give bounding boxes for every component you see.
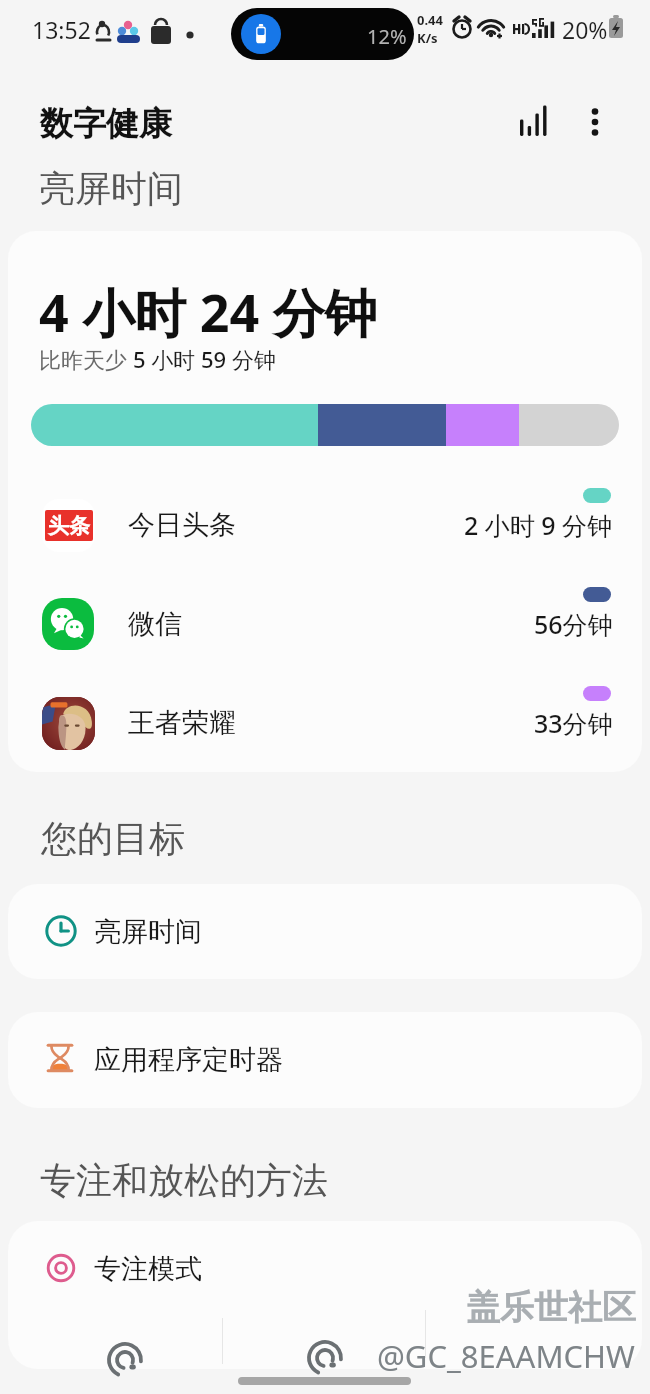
staticText: 5 小时 59 分钟 [133,344,276,374]
button[interactable]: Usage statistics [504,92,562,150]
staticText: 亮屏时间 [39,166,183,211]
button[interactable]: 数字健康 [24,93,156,155]
button[interactable]: 亮屏时间 [8,884,642,979]
staticText: 数字健康 [40,103,172,145]
staticText: 比昨天少 [39,344,133,374]
staticText: @GC_8EAAMCHW [377,1335,635,1377]
staticText: 13:52 [32,14,91,45]
staticText: 20% [562,14,608,45]
staticText: 盖乐世社区 [466,1286,636,1329]
staticText: 0.44 [417,11,443,29]
staticText: 微信 [128,607,182,641]
staticText: 应用程序定时器 [94,1043,283,1077]
staticText: 4 小时 24 分钟 [39,276,377,347]
staticText: 专注模式 [94,1252,202,1286]
staticText: 王者荣耀 [128,706,236,740]
button[interactable]: More options [566,93,624,151]
staticText: 56分钟 [534,607,613,641]
button[interactable]: 王者荣耀 [8,679,642,767]
staticText: 2 小时 9 分钟 [464,508,613,542]
staticText: 专注和放松的方法 [40,1158,328,1203]
staticText: 今日头条 [128,508,236,542]
staticText: 您的目标 [41,816,185,861]
button[interactable]: 应用程序定时器 [8,1012,642,1108]
button[interactable]: 头条 [8,481,642,569]
staticText: 33分钟 [534,706,613,740]
staticText: 亮屏时间 [94,915,202,949]
button[interactable]: 微信 [8,580,642,668]
staticText: K/s [417,29,438,47]
button[interactable]: 专注模式 [8,1221,642,1369]
staticText: 头条 [48,513,90,539]
staticText: 12% [367,23,407,50]
